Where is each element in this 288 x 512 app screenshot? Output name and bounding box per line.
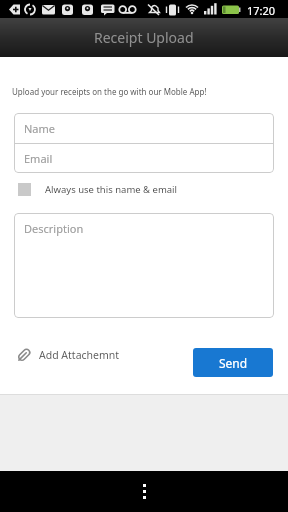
button[interactable]: Add Attachemnt: [16, 347, 120, 363]
staticText: Name: [24, 121, 56, 136]
staticText: 17:20: [247, 3, 276, 18]
button[interactable]: Description: [14, 213, 274, 318]
staticText: Add Attachemnt: [39, 348, 120, 362]
staticText: Description: [24, 221, 84, 236]
staticText: Receipt Upload: [94, 28, 194, 47]
button[interactable]: Name: [14, 113, 274, 143]
button[interactable]: Email: [14, 144, 274, 173]
staticText: Always use this name & email: [45, 183, 178, 196]
staticText: Upload your receipts on the go with our …: [12, 86, 207, 97]
staticText: Email: [24, 151, 53, 166]
button[interactable]: [143, 484, 146, 499]
staticText: Send: [219, 355, 248, 371]
button[interactable]: Always use this name & email: [18, 183, 178, 196]
button[interactable]: Send: [193, 348, 273, 377]
